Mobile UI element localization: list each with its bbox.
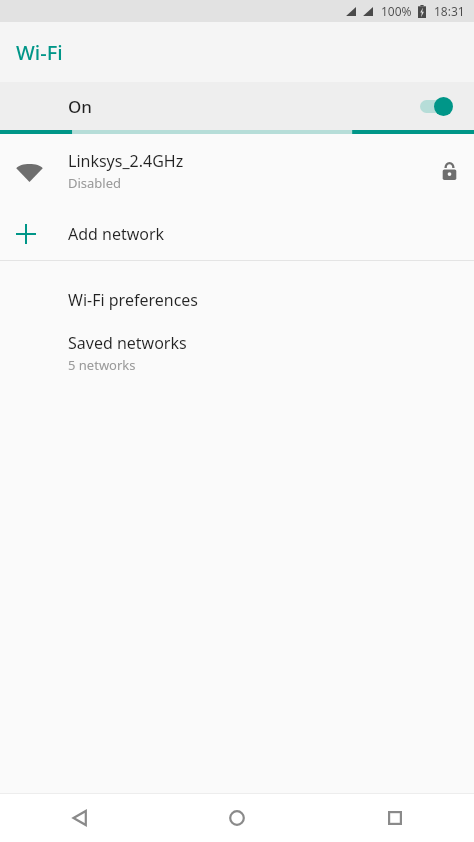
staticText: 100% xyxy=(381,3,412,19)
staticText: On xyxy=(68,95,92,118)
other: Wi-Fi on xyxy=(416,94,458,118)
staticText: Linksys_2.4GHz xyxy=(68,150,184,172)
staticText: Wi-Fi preferences xyxy=(68,289,199,311)
staticText: Saved networks xyxy=(68,332,187,354)
staticText: 5 networks xyxy=(68,356,136,374)
button[interactable]: Wi-Fi preferences xyxy=(0,275,474,325)
other: Secured network xyxy=(441,161,458,182)
other: Wi-Fi signal xyxy=(16,161,43,182)
button[interactable]: Wi-Fi signal xyxy=(0,134,474,208)
button[interactable]: Saved networks xyxy=(0,325,474,381)
button[interactable]: On xyxy=(0,82,474,130)
button[interactable]: Back xyxy=(0,794,158,842)
staticText: Add network xyxy=(68,223,165,245)
staticText: 18:31 xyxy=(434,3,465,19)
button[interactable]: Home xyxy=(158,794,316,842)
staticText: Disabled xyxy=(68,174,122,192)
button[interactable]: Add network xyxy=(0,208,474,260)
button[interactable]: Recents xyxy=(316,794,474,842)
staticText: Wi-Fi xyxy=(16,39,63,66)
